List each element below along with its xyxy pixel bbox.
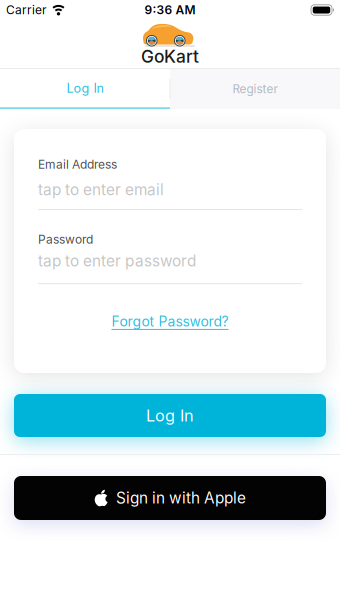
button[interactable]: Register xyxy=(170,69,340,109)
staticText: Password xyxy=(38,232,93,247)
staticText: Log In xyxy=(146,406,194,425)
staticText: Sign in with Apple xyxy=(116,489,246,507)
staticText: Email Address xyxy=(38,157,117,171)
staticText: Forgot Password? xyxy=(111,313,228,330)
staticText: tap to enter email xyxy=(38,180,164,199)
staticText: 9:36 AM xyxy=(144,3,195,17)
staticText: GoKart xyxy=(141,46,199,67)
staticText: Log In xyxy=(66,80,103,96)
staticText: Carrier xyxy=(6,3,47,17)
button[interactable]: Log In xyxy=(0,69,170,109)
button[interactable]: tap to enter email xyxy=(38,180,302,210)
button[interactable]: tap to enter password xyxy=(38,252,302,284)
staticText: tap to enter password xyxy=(38,252,196,270)
staticText: Register xyxy=(232,82,277,96)
button[interactable]: Sign in with Apple xyxy=(14,476,326,520)
button[interactable]: Log In xyxy=(14,394,326,437)
button[interactable]: Forgot Password? xyxy=(111,313,228,330)
